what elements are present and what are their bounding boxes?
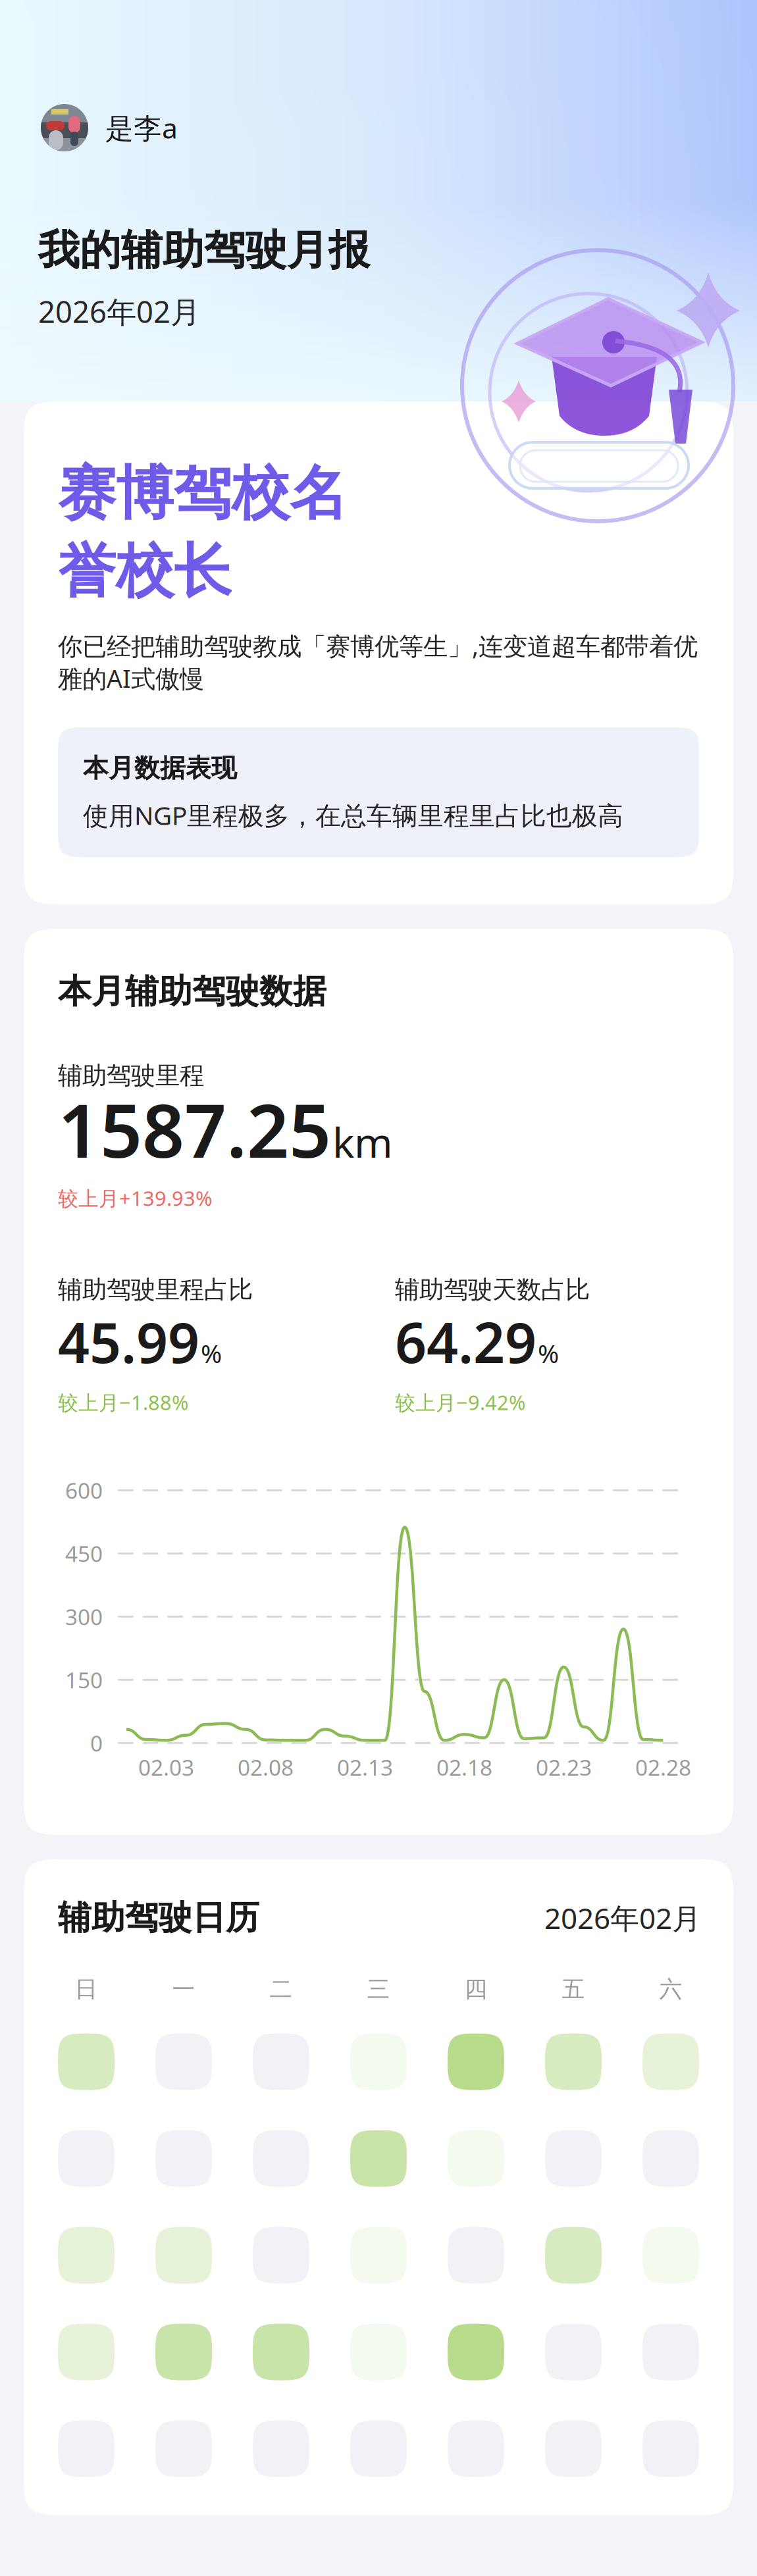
- staticText: 是李a: [105, 109, 178, 146]
- staticText: 02.08: [238, 1753, 294, 1782]
- staticText: 四: [464, 1975, 487, 2003]
- staticText: 日: [75, 1975, 98, 2003]
- staticText: 600: [65, 1476, 103, 1505]
- staticText: 02.28: [635, 1753, 691, 1782]
- staticText: 辅助驾驶里程占比: [58, 1275, 253, 1305]
- staticText: 你已经把辅助驾驶教成「赛博优等生」,连变道超车都带着优雅的AI式傲慢: [58, 629, 698, 695]
- staticText: 1587.25: [58, 1080, 331, 1178]
- staticText: 0: [90, 1728, 103, 1758]
- staticText: km: [332, 1114, 393, 1169]
- staticText: 赛博驾校名: [58, 458, 348, 529]
- staticText: 二: [270, 1975, 293, 2003]
- staticText: 辅助驾驶里程: [58, 1061, 204, 1091]
- staticText: 五: [562, 1975, 585, 2003]
- staticText: 誉校长: [58, 536, 232, 607]
- staticText: 2026年02月: [38, 292, 200, 331]
- staticText: 300: [65, 1602, 103, 1631]
- staticText: 450: [65, 1539, 103, 1568]
- staticText: 2026年02月: [544, 1899, 701, 1937]
- staticText: 辅助驾驶日历: [58, 1897, 259, 1938]
- staticText: 辅助驾驶天数占比: [395, 1275, 590, 1305]
- staticText: 一: [172, 1975, 195, 2003]
- staticText: 02.03: [138, 1753, 194, 1782]
- staticText: 02.23: [536, 1753, 592, 1782]
- staticText: 150: [65, 1665, 103, 1694]
- staticText: 较上月−9.42%: [395, 1389, 525, 1416]
- staticText: 我的辅助驾驶月报: [38, 225, 370, 276]
- staticText: 02.13: [337, 1753, 393, 1782]
- staticText: 使用NGP里程极多，在总车辆里程里占比也极高: [83, 798, 623, 832]
- staticText: %: [201, 1336, 222, 1370]
- staticText: %: [538, 1336, 559, 1370]
- staticText: 较上月−1.88%: [58, 1389, 188, 1416]
- button[interactable]: 是李a: [41, 104, 178, 151]
- staticText: 本月辅助驾驶数据: [58, 971, 326, 1012]
- staticText: 本月数据表现: [83, 752, 237, 784]
- staticText: 三: [367, 1975, 390, 2003]
- staticText: 64.29: [395, 1305, 536, 1378]
- staticText: 02.18: [436, 1753, 492, 1782]
- staticText: 较上月+139.93%: [58, 1185, 212, 1211]
- staticText: 45.99: [58, 1305, 199, 1378]
- staticText: 六: [659, 1975, 682, 2003]
